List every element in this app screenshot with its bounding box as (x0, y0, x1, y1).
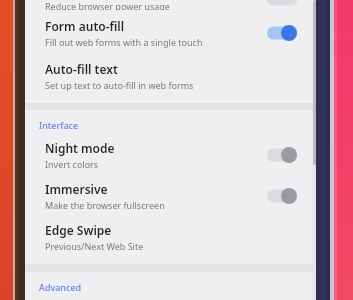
staticText: Form auto-fill (45, 18, 125, 34)
staticText: Invert colors (45, 158, 99, 170)
staticText: Set up text to auto-fill in web forms (45, 79, 194, 91)
button[interactable]: Immersive (25, 178, 313, 219)
button[interactable]: Night mode (25, 137, 313, 178)
button[interactable]: Auto-fill text (25, 56, 313, 100)
button[interactable]: Reduce browser power usage (25, 0, 313, 10)
staticText: Auto-fill text (45, 61, 118, 77)
staticText: Reduce browser power usage (45, 0, 170, 10)
staticText: Previous/Next Web Site (45, 240, 144, 252)
staticText: Immersive (45, 181, 108, 197)
staticText: Night mode (45, 140, 115, 156)
button[interactable]: Form auto-fill (25, 14, 313, 56)
staticText: Edge Swipe (45, 222, 112, 238)
staticText: Interface (39, 119, 79, 131)
staticText: Advanced (39, 281, 82, 293)
button[interactable]: Toggle off (267, 147, 297, 163)
staticText: Make the browser fullscreen (45, 199, 165, 211)
button[interactable]: Edge Swipe (25, 219, 313, 260)
button[interactable]: Toggle off (267, 188, 297, 204)
button[interactable]: Toggle on (267, 25, 297, 41)
staticText: Fill out web forms with a single touch (45, 36, 203, 48)
